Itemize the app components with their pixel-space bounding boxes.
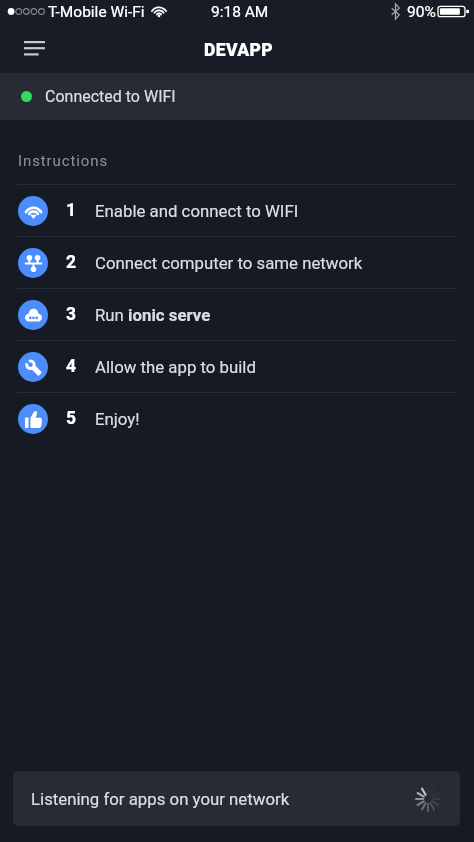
button[interactable]: Listening for apps on your network	[13, 771, 460, 826]
staticText: 90%	[407, 3, 436, 21]
staticText: Connect computer to same network	[95, 253, 363, 273]
staticText: Listening for apps on your network	[31, 789, 290, 809]
staticText: T-Mobile Wi-Fi	[48, 3, 145, 21]
staticText: Run ionic serve	[95, 305, 211, 325]
other: Loading	[416, 787, 440, 811]
staticText: Enjoy!	[95, 409, 140, 429]
staticText: Enable and connect to WIFI	[95, 201, 299, 221]
button[interactable]: 2	[0, 236, 474, 288]
button[interactable]: 4	[0, 340, 474, 392]
button[interactable]: 3	[0, 288, 474, 340]
staticText: 2	[66, 252, 77, 273]
button[interactable]: 5	[0, 392, 474, 444]
staticText: 3	[66, 304, 77, 325]
staticText: DEVAPP	[204, 40, 274, 61]
staticText: 5	[66, 408, 77, 429]
button[interactable]: Connected to WIFI	[0, 73, 474, 120]
staticText: 1	[66, 200, 77, 221]
staticText: Allow the app to build	[95, 357, 256, 377]
staticText: 9:18 AM	[211, 3, 269, 21]
staticText: Connected to WIFI	[45, 87, 176, 106]
button[interactable]: Menu	[10, 27, 54, 71]
staticText: Instructions	[18, 152, 109, 170]
staticText: 4	[66, 356, 77, 377]
button[interactable]: 1	[0, 184, 474, 236]
